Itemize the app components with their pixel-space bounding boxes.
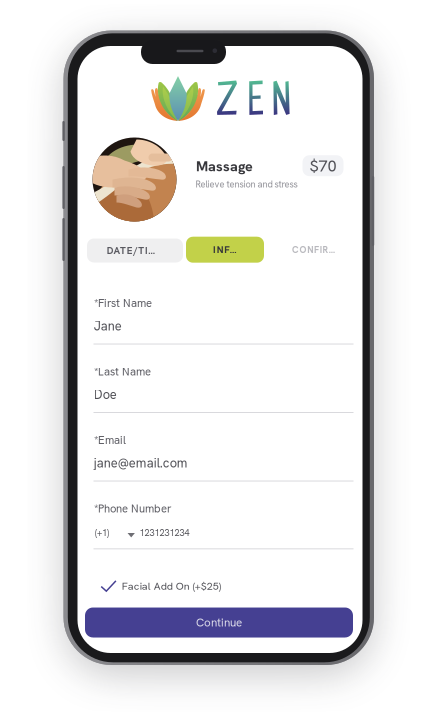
button[interactable]: INFO bbox=[186, 237, 264, 263]
staticText: $70 bbox=[309, 155, 336, 176]
staticText: Relieve tension and stress bbox=[196, 178, 298, 190]
staticText: (+1) bbox=[95, 527, 109, 539]
staticText: *Last Name bbox=[94, 364, 151, 379]
button[interactable]: Continue bbox=[85, 607, 353, 637]
button[interactable]: Facial Add On (+$25) bbox=[100, 579, 221, 593]
staticText: Facial Add On (+$25) bbox=[122, 579, 221, 593]
staticText: Massage bbox=[196, 157, 253, 176]
staticText: 1231231234 bbox=[139, 527, 189, 539]
staticText: CONFIRM bbox=[292, 244, 337, 256]
staticText: *Phone Number bbox=[94, 501, 172, 516]
staticText: INFO bbox=[213, 243, 237, 256]
staticText: Jane bbox=[94, 318, 122, 334]
button[interactable]: CONFIRM bbox=[266, 237, 362, 263]
staticText: *First Name bbox=[94, 296, 152, 310]
button[interactable]: DATE/TIME bbox=[87, 238, 183, 262]
staticText: Doe bbox=[94, 386, 117, 403]
staticText: jane@email.com bbox=[94, 455, 188, 471]
staticText: *Email bbox=[94, 433, 126, 447]
staticText: Continue bbox=[196, 615, 242, 630]
staticText: DATE/TIME bbox=[107, 244, 163, 257]
